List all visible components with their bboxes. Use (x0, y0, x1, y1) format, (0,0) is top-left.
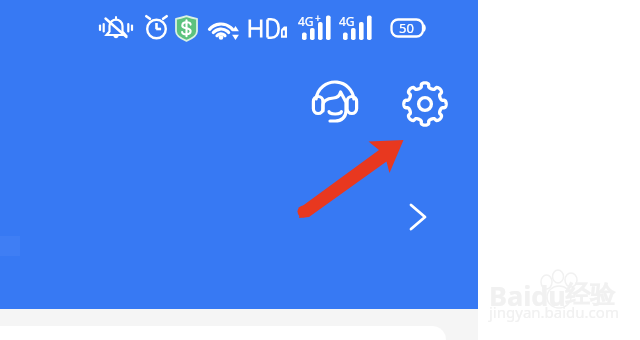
button[interactable]: Settings (401, 80, 449, 128)
staticText: 4G (298, 13, 314, 29)
button[interactable]: More (401, 195, 437, 231)
staticText: 50 (399, 19, 414, 37)
staticText: + (315, 11, 321, 25)
staticText: 4G (339, 13, 355, 29)
button[interactable]: Customer service (311, 80, 359, 128)
